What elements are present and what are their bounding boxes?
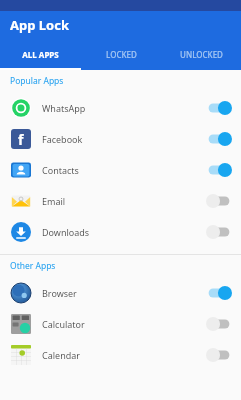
button[interactable]: UNLOCKED (161, 38, 241, 70)
button[interactable]: ALL APPS (0, 38, 81, 70)
staticText: Browser (42, 287, 206, 299)
button[interactable]: Locked toggle on (206, 131, 232, 147)
staticText: Contacts (42, 164, 206, 176)
staticText: Other Apps (10, 260, 56, 272)
button[interactable]: Calculator (0, 308, 241, 339)
button[interactable]: Locked toggle on (206, 162, 232, 178)
button[interactable]: Downloads (0, 216, 241, 247)
button[interactable]: f (0, 123, 241, 154)
button[interactable]: LOCKED (81, 38, 161, 70)
button[interactable]: Contacts (0, 154, 241, 185)
staticText: Popular Apps (10, 75, 64, 87)
button[interactable]: Calendar (0, 339, 241, 370)
button[interactable]: Browser (0, 277, 241, 308)
staticText: App Lock (10, 16, 69, 34)
staticText: Downloads (42, 226, 206, 238)
button[interactable]: Locked toggle off (206, 316, 232, 332)
button[interactable]: Locked toggle off (206, 193, 232, 209)
button[interactable]: Locked toggle off (206, 224, 232, 240)
staticText: LOCKED (106, 49, 137, 60)
button[interactable]: Locked toggle on (206, 285, 232, 301)
staticText: Calendar (42, 349, 206, 361)
staticText: UNLOCKED (180, 49, 223, 60)
button[interactable]: Email (0, 185, 241, 216)
staticText: Facebook (42, 133, 206, 145)
button[interactable]: WhatsApp (0, 92, 241, 123)
staticText: ALL APPS (22, 49, 59, 60)
button[interactable]: Locked toggle on (206, 100, 232, 116)
button[interactable]: Locked toggle off (206, 347, 232, 363)
staticText: Email (42, 195, 206, 207)
staticText: Calculator (42, 318, 206, 330)
staticText: f (18, 130, 24, 149)
staticText: WhatsApp (42, 102, 206, 114)
